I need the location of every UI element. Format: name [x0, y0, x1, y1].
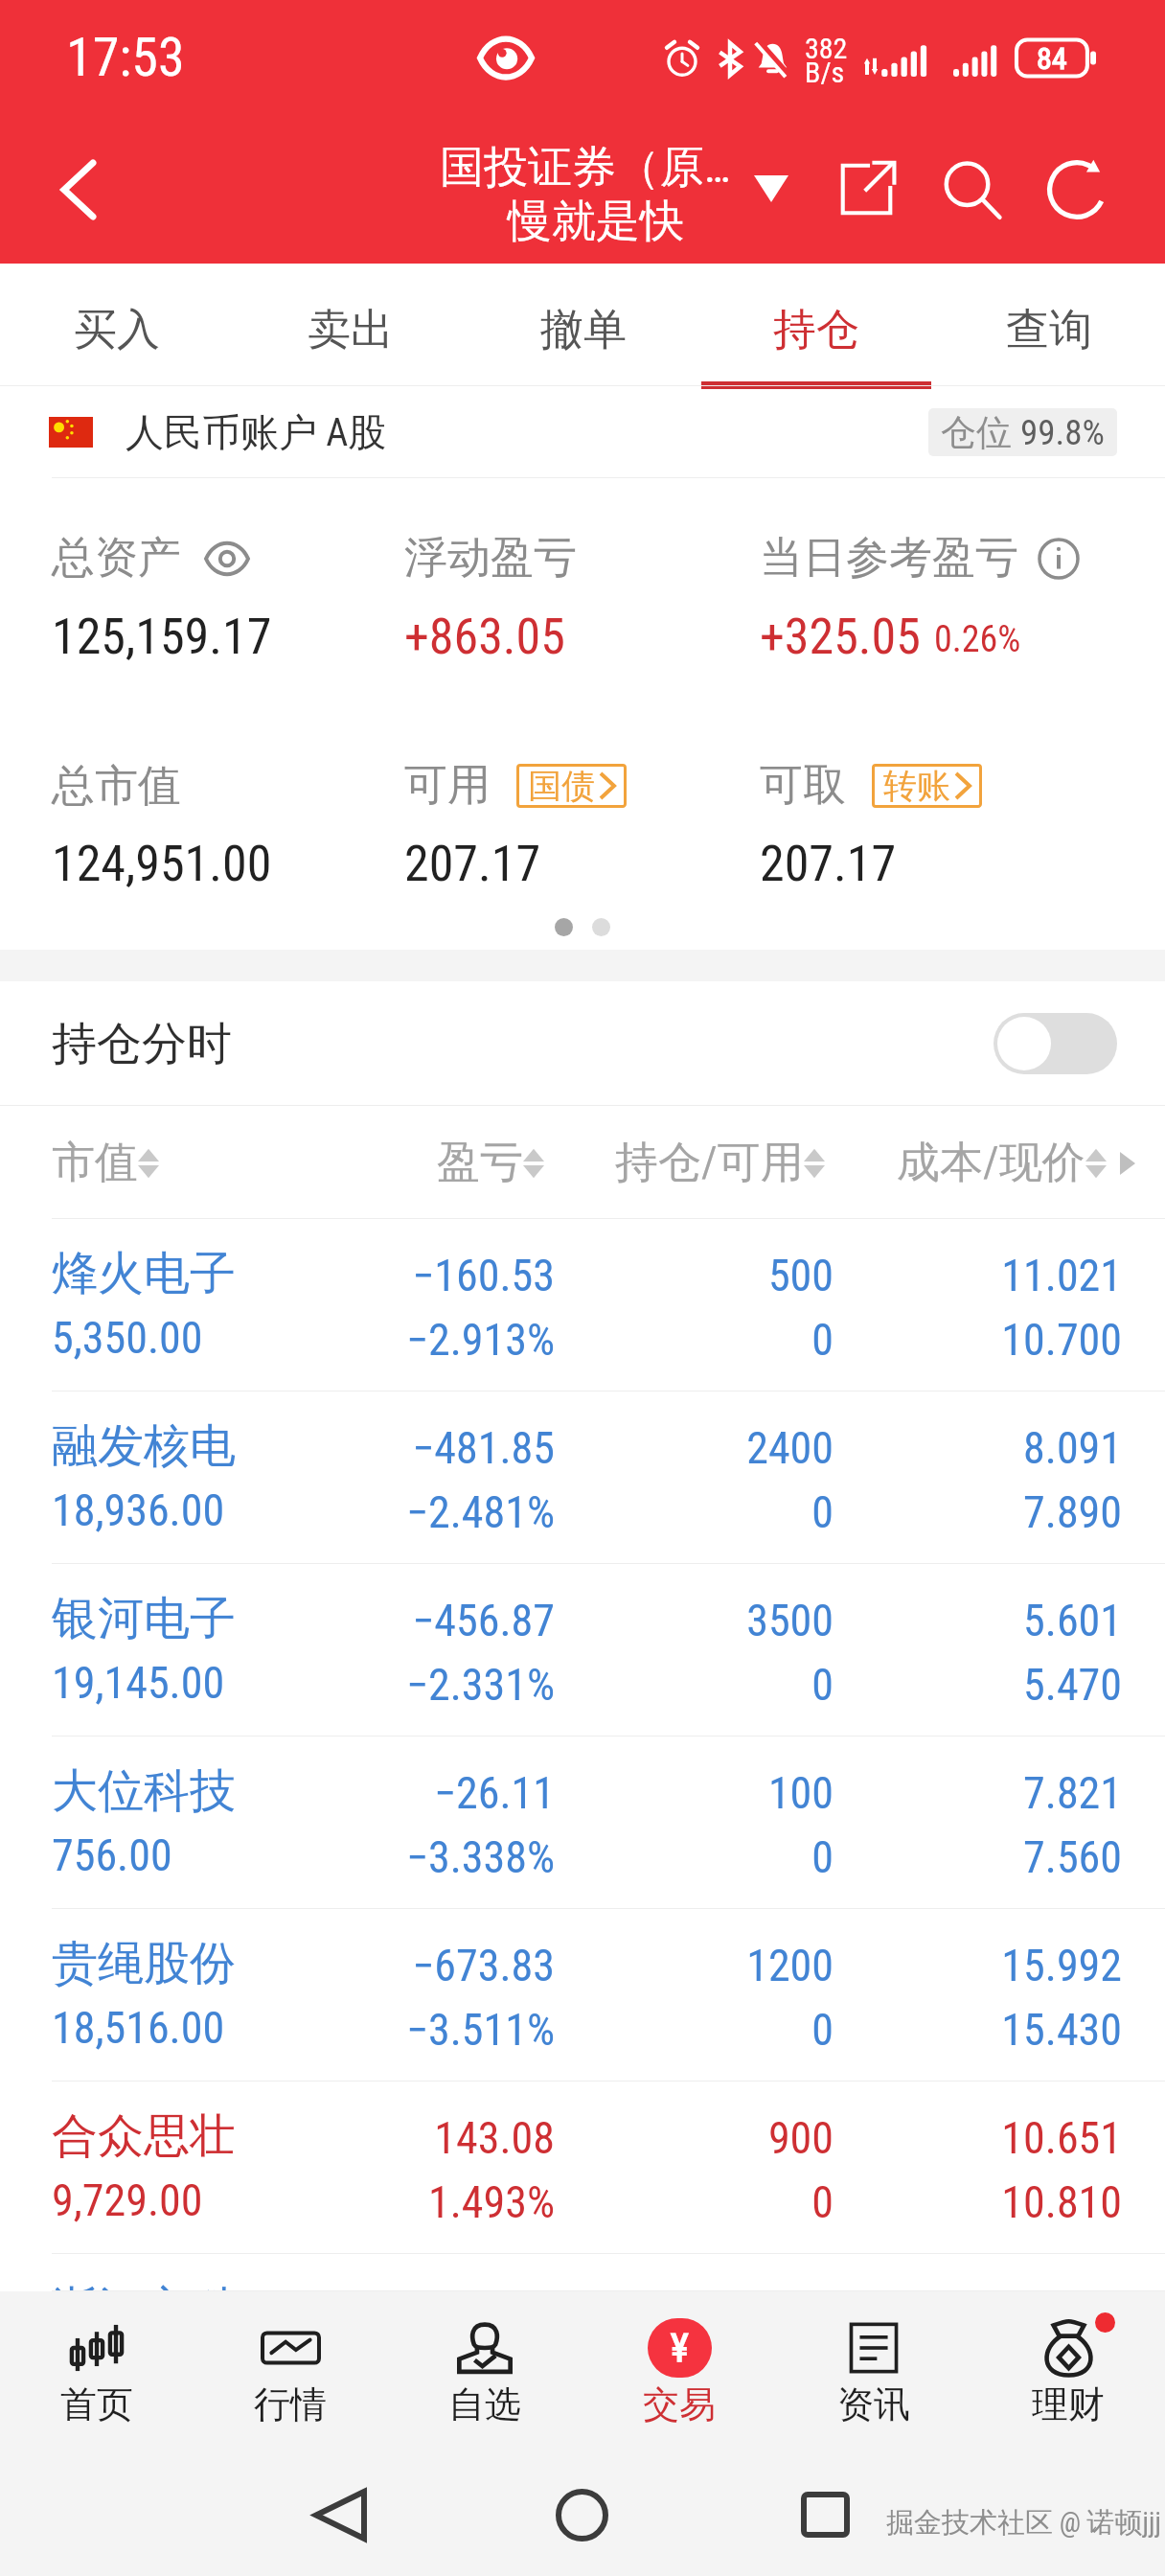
staticText: 8.091	[0, 1422, 1122, 1474]
staticText: 持仓分时	[52, 1016, 232, 1072]
staticText: 1200	[0, 1940, 834, 1991]
staticText: 382	[805, 32, 848, 65]
staticText: 207.17	[760, 835, 897, 893]
staticText: 17:53	[66, 26, 185, 89]
staticText: −456.87	[0, 1595, 555, 1646]
staticText: 行情	[254, 2381, 327, 2427]
staticText: 人民币账户 A股	[126, 408, 387, 456]
staticText: 2400	[0, 1422, 834, 1474]
button[interactable]: 撤单	[467, 264, 699, 386]
button[interactable]: Search	[927, 134, 1016, 244]
staticText: 当日参考盈亏	[760, 531, 1018, 586]
button[interactable]: 自选	[387, 2291, 582, 2448]
button[interactable]: 国债	[516, 764, 627, 808]
staticText: 19,145.00	[52, 1657, 225, 1709]
staticText: −160.53	[0, 1250, 555, 1301]
staticText: 慢就是快	[508, 194, 684, 249]
button[interactable]: 买入	[0, 264, 234, 386]
button[interactable]: Refresh	[1033, 134, 1121, 244]
staticText: 11.021	[0, 1250, 1122, 1301]
button[interactable]: Toggle intraday	[994, 1013, 1117, 1074]
staticText: 756.00	[52, 1829, 172, 1881]
staticText: 买入	[74, 303, 160, 357]
staticText: 总资产	[52, 531, 181, 586]
staticText: 贵绳股份	[52, 1935, 236, 1992]
staticText: 124,951.00	[52, 835, 272, 893]
button[interactable]: 合众思壮	[0, 2081, 1165, 2254]
staticText: 1900	[0, 2285, 834, 2291]
staticText: 查询	[1006, 303, 1092, 357]
staticText: 转账	[883, 765, 950, 807]
staticText: 盈亏	[437, 1136, 523, 1190]
staticText: 7.890	[0, 1486, 1122, 1538]
button[interactable]: 转账	[872, 764, 982, 808]
staticText: 市值	[52, 1136, 138, 1190]
staticText: 浮动盈亏	[404, 531, 577, 586]
button[interactable]: Share	[822, 134, 910, 244]
staticText: 7.560	[0, 1831, 1122, 1883]
button[interactable]: 查询	[932, 264, 1165, 386]
staticText: 总市值	[52, 759, 181, 814]
button[interactable]: 融发核电	[0, 1391, 1165, 1564]
staticText: 0	[0, 2176, 834, 2228]
staticText: 理财	[1032, 2381, 1105, 2427]
staticText: 18,516.00	[52, 2002, 225, 2054]
staticText: −3.338%	[0, 1831, 555, 1883]
button[interactable]: 行情	[194, 2291, 387, 2448]
staticText: 0.26%	[934, 618, 1021, 661]
button[interactable]: 持仓	[699, 264, 932, 386]
button[interactable]: 首页	[0, 2291, 194, 2448]
button[interactable]: 卖出	[234, 264, 467, 386]
staticText: −3.511%	[0, 2004, 555, 2056]
staticText: 9,729.00	[52, 2174, 203, 2226]
staticText: 100	[0, 1767, 834, 1819]
staticText: 84	[1037, 40, 1067, 77]
button[interactable]: 浙江交科	[0, 2254, 1165, 2291]
staticText: 10.700	[0, 1314, 1122, 1366]
button[interactable]: 贵绳股份	[0, 1909, 1165, 2081]
staticText: −673.83	[0, 1940, 555, 1991]
button[interactable]: Recents	[770, 2467, 879, 2563]
staticText: 10.810	[0, 2176, 1122, 2228]
staticText: 143.08	[0, 2112, 555, 2164]
button[interactable]: Back	[16, 115, 141, 264]
staticText: 持仓	[773, 303, 859, 357]
staticText: 银河电子	[52, 1590, 236, 1647]
button[interactable]: 烽火电子	[0, 1219, 1165, 1391]
staticText: 1.493%	[0, 2176, 555, 2228]
staticText: 18,936.00	[52, 1484, 225, 1536]
staticText: 自选	[448, 2381, 521, 2427]
staticText: 125,159.17	[52, 608, 272, 666]
staticText: 可取	[760, 758, 846, 813]
staticText: ¥	[671, 2326, 689, 2371]
button[interactable]: 银河电子	[0, 1564, 1165, 1736]
button[interactable]: ¥	[582, 2291, 776, 2448]
staticText: +325.05	[760, 608, 921, 666]
staticText: 207.17	[404, 835, 541, 893]
staticText: −481.85	[0, 1422, 555, 1474]
staticText: 0	[0, 2004, 834, 2056]
staticText: 10.651	[0, 2112, 1122, 2164]
staticText: 资讯	[837, 2381, 910, 2427]
staticText: 0	[0, 1659, 834, 1711]
staticText: 成本/现价	[897, 1136, 1085, 1190]
staticText: −26.11	[0, 1767, 555, 1819]
staticText: 烽火电子	[52, 1245, 236, 1302]
staticText: 0	[0, 1486, 834, 1538]
button[interactable]: 人民币账户 A股	[0, 386, 1165, 478]
staticText: 0	[0, 1831, 834, 1883]
button[interactable]: Back	[286, 2467, 395, 2563]
staticText: 合众思壮	[52, 2107, 236, 2165]
staticText: 可用	[404, 758, 491, 813]
staticText: 5,350.00	[52, 1312, 203, 1364]
staticText: 大位科技	[52, 1762, 236, 1820]
button[interactable]: 资讯	[776, 2291, 971, 2448]
button[interactable]: 理财	[971, 2291, 1165, 2448]
button[interactable]: Switch account	[741, 157, 802, 220]
staticText: 99.8%	[1020, 412, 1105, 453]
button[interactable]: Home	[527, 2467, 636, 2563]
button[interactable]: 大位科技	[0, 1736, 1165, 1909]
staticText: 5.470	[0, 1659, 1122, 1711]
staticText: 掘金技术社区 @ 诺顿jjj	[886, 2505, 1162, 2541]
staticText: −2.481%	[0, 1486, 555, 1538]
